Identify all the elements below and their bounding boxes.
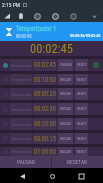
- button[interactable]: RESETAR: [52, 156, 103, 168]
- staticText: Temporizador 2: [11, 77, 32, 82]
- button[interactable]: RESET: [75, 118, 88, 130]
- button[interactable]: Temporizador 3: [0, 88, 103, 100]
- staticText: INICIAR: [60, 122, 71, 126]
- button[interactable]: RESET: [75, 88, 88, 100]
- button[interactable]: Done: [89, 59, 103, 71]
- staticText: Temporizador 6: [11, 136, 32, 141]
- button[interactable]: Home: [45, 169, 59, 183]
- staticText: 00:02:45: [16, 34, 32, 39]
- staticText: 01:00:00: [34, 148, 56, 156]
- staticText: RESET: [77, 92, 87, 96]
- button[interactable]: Temporizador 5: [0, 118, 103, 130]
- staticText: Temporizador 1: [16, 25, 57, 33]
- staticText: INICIAR: [60, 150, 71, 154]
- button[interactable]: Recents: [74, 169, 88, 183]
- button[interactable]: Timer icon: [3, 26, 14, 37]
- staticText: Temporizador 3: [11, 92, 32, 97]
- staticText: Temporizador 4: [11, 107, 32, 112]
- staticText: Temporizador 1: [11, 63, 32, 68]
- staticText: RESET: [77, 78, 87, 82]
- button[interactable]: INICIAR: [58, 147, 73, 156]
- button[interactable]: Temporizador 1: [0, 59, 103, 71]
- staticText: Temporizador 7: [11, 149, 32, 154]
- button[interactable]: INICIAR: [58, 103, 73, 115]
- button[interactable]: Temporizador 6: [0, 133, 103, 144]
- button[interactable]: RESET: [75, 103, 88, 115]
- staticText: 00:02:30: [34, 105, 56, 113]
- staticText: 2:15 PM: [2, 2, 20, 8]
- staticText: 00:02:45: [30, 41, 73, 56]
- staticText: 00:00:15: [34, 135, 56, 143]
- staticText: RESET: [77, 137, 87, 141]
- button[interactable]: RESET: [75, 74, 88, 85]
- button[interactable]: INICIAR: [58, 88, 73, 100]
- button[interactable]: RESET: [75, 147, 88, 156]
- staticText: PAUSAR: [60, 63, 72, 67]
- button[interactable]: Temporizador 4: [0, 103, 103, 115]
- button[interactable]: PAUSAR: [58, 59, 73, 71]
- button[interactable]: INICIAR: [58, 133, 73, 144]
- button[interactable]: INICIAR: [58, 118, 73, 130]
- staticText: 00:00:36/00:02:45: [70, 33, 101, 38]
- button[interactable]: Back: [15, 169, 29, 183]
- button[interactable]: Temporizador 2: [0, 74, 103, 85]
- staticText: RESET: [77, 107, 87, 111]
- button[interactable]: RESET: [75, 133, 88, 144]
- staticText: PAUSAR: [17, 159, 35, 165]
- button[interactable]: RESET: [75, 59, 88, 71]
- staticText: RESET: [77, 150, 87, 154]
- staticText: RESET: [77, 122, 87, 126]
- button[interactable]: PAUSAR: [0, 156, 51, 168]
- staticText: 00:02:45: [34, 61, 56, 69]
- staticText: INICIAR: [60, 78, 71, 82]
- staticText: INICIAR: [60, 92, 71, 96]
- staticText: 00:20:00: [34, 120, 56, 128]
- staticText: RESETAR: [67, 159, 88, 165]
- staticText: Temporizador 5: [11, 122, 32, 127]
- staticText: INICIAR: [60, 107, 71, 111]
- button[interactable]: Temporizador 7: [0, 147, 103, 156]
- staticText: RESET: [77, 63, 87, 67]
- button[interactable]: INICIAR: [58, 74, 73, 85]
- staticText: INICIAR: [60, 137, 71, 141]
- staticText: 00:10:00: [34, 76, 56, 84]
- staticText: 00:00:20: [34, 90, 56, 98]
